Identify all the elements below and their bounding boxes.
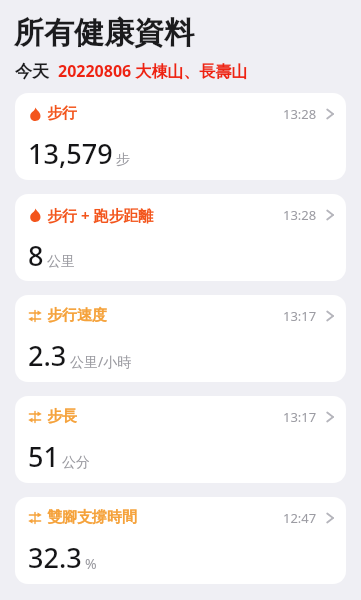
- staticText: 步行 + 跑步距離: [47, 205, 154, 225]
- staticText: 13:17: [283, 408, 317, 426]
- other: Open details: [326, 208, 334, 222]
- staticText: 步: [116, 151, 130, 169]
- staticText: 步行: [47, 104, 77, 123]
- staticText: 2.3: [28, 337, 67, 374]
- staticText: 公里/小時: [70, 352, 132, 371]
- staticText: 12:47: [283, 509, 317, 527]
- staticText: 所有健康資料: [14, 14, 194, 52]
- other: Speed: [28, 511, 42, 525]
- staticText: 13:28: [283, 105, 317, 123]
- staticText: %: [85, 554, 97, 573]
- staticText: 雙腳支撐時間: [47, 508, 137, 527]
- button[interactable]: Activity: [15, 194, 346, 281]
- staticText: 公分: [62, 454, 90, 472]
- staticText: 13,579: [28, 135, 113, 172]
- button[interactable]: Speed: [15, 396, 346, 483]
- staticText: 32.3: [28, 539, 82, 576]
- other: Open details: [326, 107, 334, 121]
- staticText: 今天: [15, 61, 49, 82]
- other: Activity: [28, 107, 42, 121]
- staticText: 51: [28, 438, 59, 475]
- staticText: 20220806 大棟山、長壽山: [58, 60, 248, 82]
- staticText: 公里: [47, 253, 75, 271]
- other: Speed: [28, 309, 42, 323]
- other: Open details: [326, 410, 334, 424]
- staticText: 8: [28, 237, 44, 274]
- button[interactable]: Activity: [15, 93, 346, 180]
- other: Speed: [28, 410, 42, 424]
- button[interactable]: Speed: [15, 295, 346, 382]
- other: Open details: [326, 511, 334, 525]
- button[interactable]: Speed: [15, 497, 346, 584]
- staticText: 步行速度: [47, 306, 107, 325]
- staticText: 13:17: [283, 307, 317, 325]
- staticText: 步長: [47, 407, 77, 426]
- other: Activity: [28, 208, 42, 222]
- staticText: 13:28: [283, 206, 317, 224]
- other: Open details: [326, 309, 334, 323]
